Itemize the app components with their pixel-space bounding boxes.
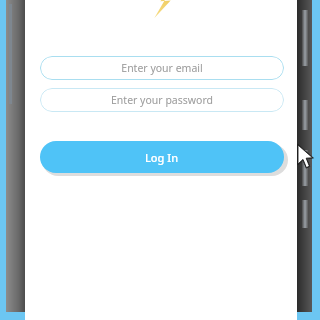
- button[interactable]: Enter your email: [40, 56, 284, 80]
- other: Side button: [302, 200, 308, 228]
- other: Side button: [302, 150, 308, 186]
- other: Side button: [302, 100, 308, 130]
- staticText: Log In: [145, 150, 179, 165]
- button[interactable]: Enter your password: [40, 88, 284, 112]
- staticText: Enter your password: [111, 93, 213, 107]
- other: Side button: [302, 10, 308, 66]
- staticText: Enter your email: [121, 61, 203, 75]
- button[interactable]: Log In: [40, 141, 284, 173]
